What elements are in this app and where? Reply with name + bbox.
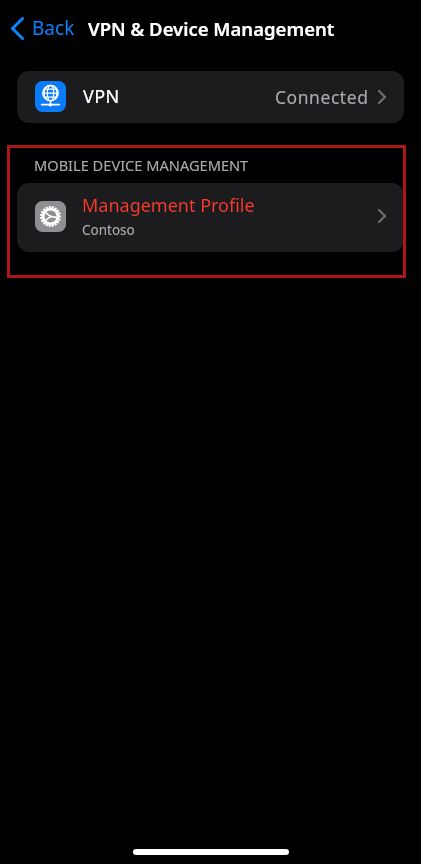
staticText: VPN (83, 84, 120, 109)
staticText: MOBILE DEVICE MANAGEMENT (34, 155, 249, 175)
staticText: Connected (275, 85, 369, 109)
button[interactable]: VPN (17, 71, 404, 123)
staticText: Back (32, 15, 75, 41)
staticText: VPN & Device Management (88, 16, 335, 41)
button[interactable]: Back (6, 10, 80, 46)
staticText: Management Profile (82, 193, 255, 218)
staticText: Contoso (82, 221, 135, 239)
button[interactable]: Management Profile (17, 183, 404, 252)
